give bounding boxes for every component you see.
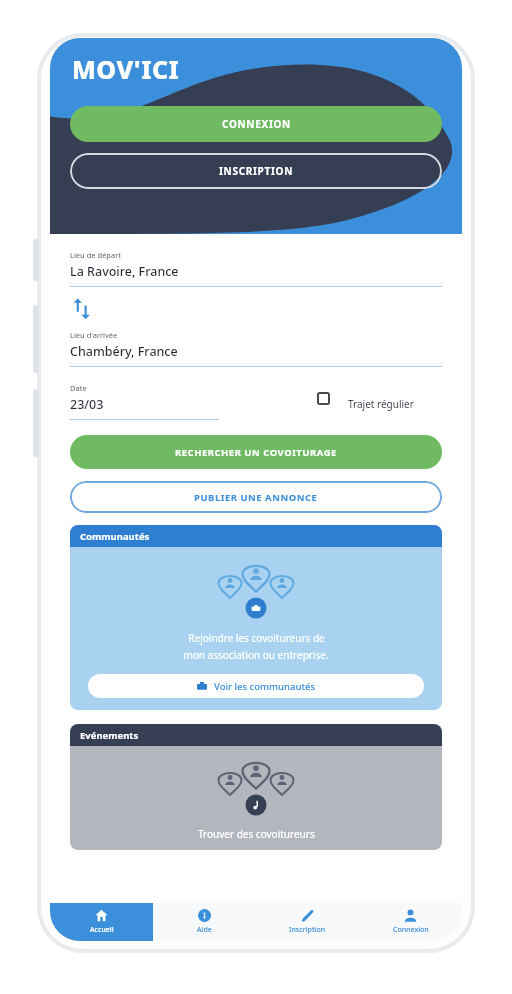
button[interactable]: Aide [153, 903, 256, 941]
button[interactable]: CONNEXION [70, 106, 442, 142]
staticText: Date [70, 383, 87, 393]
button[interactable]: Accueil [50, 903, 153, 941]
staticText: CONNEXION [222, 117, 291, 131]
staticText: Lieu de départ [70, 250, 121, 260]
staticText: PUBLIER UNE ANNONCE [194, 491, 318, 504]
staticText: Chambéry, France [70, 343, 178, 360]
staticText: Trouver des covoitureurs [198, 827, 315, 841]
button[interactable]: Evénements [70, 724, 442, 850]
button[interactable]: Inverser départ et arrivée [70, 298, 96, 320]
button[interactable]: RECHERCHER UN COVOITURAGE [70, 435, 442, 469]
button[interactable]: Inscription [256, 903, 359, 941]
staticText: Voir les communautés [214, 680, 316, 693]
staticText: 23/03 [70, 396, 104, 413]
staticText: Aide [197, 925, 212, 935]
staticText: Trajet régulier [348, 397, 414, 411]
staticText: Evénements [80, 729, 139, 742]
staticText: Inscription [289, 925, 326, 935]
staticText: Rejoindre les covoitureurs de [188, 631, 325, 645]
staticText: La Ravoire, France [70, 263, 179, 280]
button[interactable]: Voir les communautés [88, 674, 424, 698]
staticText: RECHERCHER UN COVOITURAGE [175, 446, 337, 459]
staticText: Connexion [393, 925, 429, 935]
button[interactable]: Trajet régulier [310, 385, 336, 411]
staticText: mon association ou entreprise. [183, 648, 329, 662]
button[interactable]: Connexion [359, 903, 462, 941]
button[interactable]: Communautés [70, 525, 442, 710]
staticText: Communautés [80, 530, 150, 543]
button[interactable]: PUBLIER UNE ANNONCE [70, 481, 442, 513]
staticText: Accueil [90, 925, 114, 935]
staticText: MOV'ICI [72, 52, 180, 86]
staticText: INSCRIPTION [219, 164, 294, 178]
staticText: Lieu d'arrivée [70, 330, 118, 340]
button[interactable]: INSCRIPTION [70, 153, 442, 189]
